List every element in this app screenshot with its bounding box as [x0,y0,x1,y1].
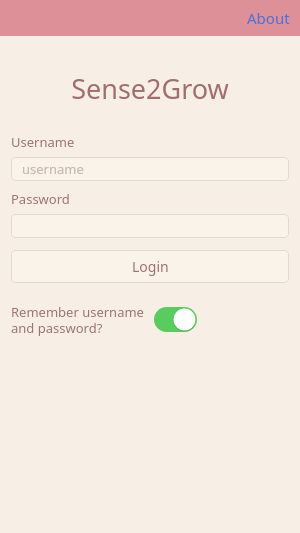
staticText: Remember username and password? [11,303,144,336]
button[interactable]: username [11,157,289,181]
button[interactable]: Login [11,250,289,283]
staticText: Sense2Grow [71,70,229,107]
button[interactable]: Remember username and password? [11,303,289,336]
staticText: Login [132,257,169,276]
staticText: Password [11,190,70,208]
staticText: About [247,8,290,28]
button[interactable]: About [237,2,300,34]
staticText: Username [11,133,75,151]
staticText: username [22,160,84,178]
button[interactable]: Remember username and password toggle [154,307,197,332]
button[interactable] [11,214,289,238]
